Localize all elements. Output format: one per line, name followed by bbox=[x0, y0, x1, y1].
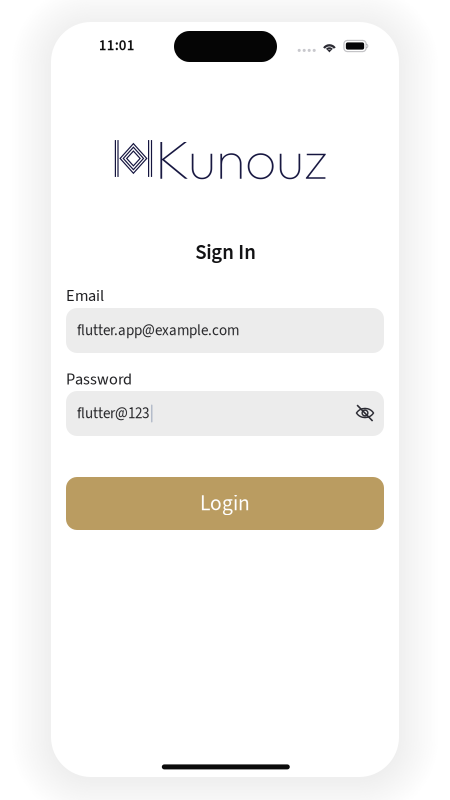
staticText: flutter.app@example.com bbox=[77, 320, 239, 341]
staticText: Password bbox=[66, 368, 132, 391]
staticText: Email bbox=[66, 284, 104, 308]
staticText: Login bbox=[200, 488, 250, 519]
button[interactable]: Login bbox=[66, 477, 384, 530]
staticText: flutter@123 bbox=[77, 403, 149, 424]
staticText: Kunouz bbox=[155, 124, 328, 193]
staticText: 11:01 bbox=[99, 35, 135, 56]
staticText: Sign In bbox=[195, 238, 256, 267]
button[interactable]: Show password bbox=[348, 395, 382, 431]
